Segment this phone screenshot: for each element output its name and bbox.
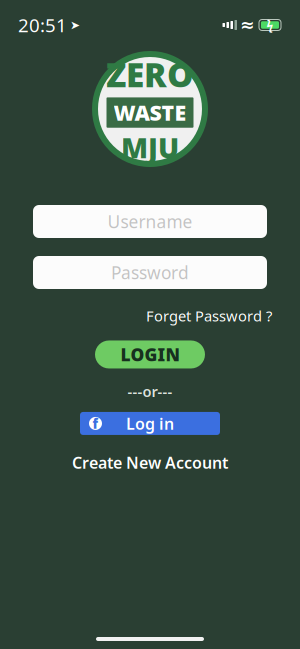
staticText: Forget Password ?	[146, 306, 272, 325]
staticText: Username	[107, 210, 192, 233]
staticText: Create New Account	[72, 452, 228, 473]
staticText: WASTE	[113, 98, 186, 127]
staticText: Password	[111, 261, 189, 284]
staticText: ≈	[240, 15, 255, 35]
button[interactable]: Create New Account	[64, 448, 236, 477]
staticText: LOGIN	[120, 343, 179, 366]
button[interactable]: Forget Password ?	[146, 303, 272, 328]
button[interactable]: Password	[33, 256, 267, 289]
staticText: ϟ	[266, 17, 273, 33]
staticText: MJU	[121, 129, 179, 166]
button[interactable]: Username	[33, 205, 267, 238]
staticText: Log in	[126, 413, 174, 434]
staticText: 20:51	[18, 13, 67, 37]
staticText: ➤	[70, 18, 80, 32]
button[interactable]: LOGIN	[95, 340, 205, 368]
staticText: f	[92, 415, 98, 432]
staticText: ZERO	[106, 52, 194, 96]
staticText: ---or---	[127, 381, 172, 401]
button[interactable]: Log in	[80, 412, 220, 435]
